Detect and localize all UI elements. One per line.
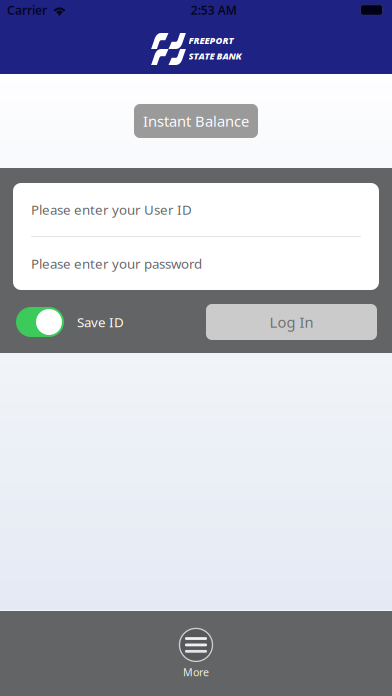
staticText: Carrier bbox=[7, 2, 47, 18]
staticText: More bbox=[183, 665, 209, 679]
button[interactable]: Instant Balance bbox=[134, 104, 258, 138]
staticText: Save ID bbox=[77, 313, 124, 331]
staticText: Instant Balance bbox=[143, 111, 249, 131]
staticText: Please enter your User ID bbox=[31, 201, 192, 218]
staticText: Log In bbox=[269, 312, 313, 332]
button[interactable]: Please enter your User ID bbox=[13, 183, 379, 236]
button[interactable]: Log In bbox=[206, 304, 377, 340]
staticText: 2:53 AM bbox=[191, 2, 237, 18]
staticText: FREEPORT bbox=[188, 34, 233, 47]
staticText: STATE BANK bbox=[188, 50, 241, 62]
button[interactable]: Save ID bbox=[16, 307, 124, 337]
staticText: Please enter your password bbox=[31, 255, 202, 272]
button[interactable]: More bbox=[0, 611, 392, 696]
button[interactable]: Please enter your password bbox=[13, 237, 379, 290]
